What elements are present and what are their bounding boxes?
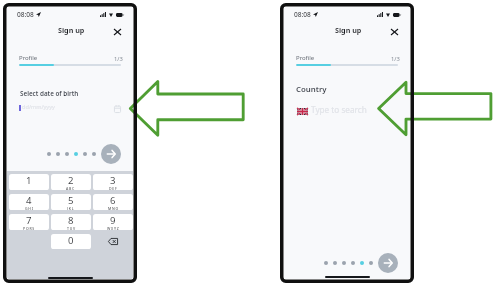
staticText: JKL (67, 206, 75, 210)
button[interactable]: Next (378, 253, 398, 273)
staticText: GHI (25, 206, 34, 210)
button[interactable]: Close (388, 26, 400, 38)
button[interactable]: 5 (51, 194, 91, 210)
staticText: 1/3 (114, 55, 123, 63)
staticText: Sign up (335, 25, 362, 35)
button[interactable]: Next (101, 144, 121, 164)
staticText: dd/mm/yyyy (22, 103, 55, 111)
button[interactable]: 3 (93, 174, 133, 190)
staticText: MNO (108, 206, 119, 210)
staticText: Profile (19, 54, 38, 62)
staticText: TUV (67, 226, 76, 230)
staticText: 9 (110, 214, 116, 227)
staticText: 5 (68, 194, 74, 207)
staticText: Country (296, 84, 327, 95)
staticText: Profile (296, 54, 315, 62)
staticText: PQRS (23, 226, 36, 230)
button[interactable]: 0 (51, 234, 91, 249)
staticText: 7 (26, 214, 32, 227)
button[interactable]: 8 (51, 214, 91, 230)
staticText: Type to search (311, 104, 367, 115)
staticText: 1 (26, 174, 32, 187)
staticText: 6 (110, 194, 116, 207)
staticText: 1/3 (391, 55, 400, 63)
button[interactable]: 6 (93, 194, 133, 210)
button[interactable]: dd/mm/yyyy (19, 102, 129, 116)
button[interactable]: 7 (9, 214, 49, 230)
button[interactable]: Backspace (93, 234, 133, 249)
staticText: WXYZ (107, 226, 120, 230)
staticText: 4 (26, 194, 32, 207)
staticText: 08:08 (17, 10, 34, 19)
staticText: Sign up (58, 25, 85, 35)
button[interactable]: Close (111, 26, 123, 38)
staticText: ABC (66, 186, 76, 190)
button[interactable]: 2 (51, 174, 91, 190)
staticText: 2 (68, 174, 74, 187)
button[interactable]: 4 (9, 194, 49, 210)
staticText: DEF (109, 186, 118, 190)
button[interactable]: 9 (93, 214, 133, 230)
staticText: 08:08 (294, 10, 311, 19)
staticText: 8 (68, 214, 74, 227)
staticText: Select date of birth (20, 89, 79, 98)
staticText: 3 (110, 174, 116, 187)
button[interactable]: Type to search (295, 103, 405, 117)
button[interactable]: 1 (9, 174, 49, 190)
staticText: 0 (68, 234, 74, 247)
